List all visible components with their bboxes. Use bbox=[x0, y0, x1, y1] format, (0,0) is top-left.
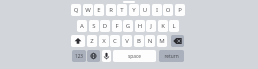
button[interactable]: Shift bbox=[71, 35, 85, 47]
staticText: I bbox=[152, 6, 162, 14]
button[interactable]: Next keyboard bbox=[87, 50, 100, 62]
button[interactable]: Backspace bbox=[171, 35, 184, 47]
staticText: F bbox=[112, 22, 122, 30]
staticText: H bbox=[135, 22, 145, 30]
staticText: return bbox=[159, 53, 184, 60]
button[interactable]: P bbox=[175, 4, 185, 16]
staticText: G bbox=[123, 22, 133, 30]
staticText: X bbox=[99, 37, 109, 45]
staticText: K bbox=[158, 22, 168, 30]
button[interactable]: Y bbox=[129, 4, 139, 16]
staticText: E bbox=[94, 6, 104, 14]
button[interactable]: return bbox=[159, 50, 184, 62]
staticText: M bbox=[157, 37, 167, 45]
staticText: V bbox=[122, 37, 132, 45]
staticText: O bbox=[163, 6, 173, 14]
staticText: N bbox=[145, 37, 155, 45]
button[interactable]: Z bbox=[87, 35, 97, 47]
button[interactable]: L bbox=[169, 20, 179, 32]
button[interactable]: W bbox=[83, 4, 93, 16]
button[interactable]: V bbox=[122, 35, 132, 47]
staticText: Z bbox=[87, 37, 97, 45]
button[interactable]: F bbox=[112, 20, 122, 32]
button[interactable]: 123 bbox=[72, 50, 86, 62]
button[interactable]: C bbox=[110, 35, 120, 47]
button[interactable]: I bbox=[152, 4, 162, 16]
button[interactable]: D bbox=[100, 20, 110, 32]
button[interactable]: E bbox=[94, 4, 104, 16]
button[interactable]: T bbox=[117, 4, 127, 16]
button[interactable]: J bbox=[146, 20, 156, 32]
button[interactable]: A bbox=[77, 20, 87, 32]
staticText: S bbox=[89, 22, 99, 30]
button[interactable]: O bbox=[163, 4, 173, 16]
staticText: L bbox=[169, 22, 179, 30]
button[interactable]: X bbox=[99, 35, 109, 47]
button[interactable]: M bbox=[157, 35, 167, 47]
staticText: 123 bbox=[72, 53, 86, 59]
staticText: P bbox=[175, 6, 185, 14]
staticText: space bbox=[113, 53, 156, 60]
button[interactable]: R bbox=[106, 4, 116, 16]
staticText: U bbox=[140, 6, 150, 14]
button[interactable]: Dictate bbox=[102, 50, 111, 62]
button[interactable]: N bbox=[145, 35, 155, 47]
staticText: J bbox=[146, 22, 156, 30]
staticText: W bbox=[83, 6, 93, 14]
button[interactable]: H bbox=[135, 20, 145, 32]
button[interactable]: G bbox=[123, 20, 133, 32]
button[interactable]: B bbox=[134, 35, 144, 47]
button[interactable]: space bbox=[113, 50, 156, 62]
button[interactable]: K bbox=[158, 20, 168, 32]
staticText: B bbox=[134, 37, 144, 45]
staticText: Q bbox=[71, 6, 81, 14]
staticText: C bbox=[110, 37, 120, 45]
staticText: R bbox=[106, 6, 116, 14]
staticText: A bbox=[77, 22, 87, 30]
staticText: Y bbox=[129, 6, 139, 14]
button[interactable]: Q bbox=[71, 4, 81, 16]
staticText: T bbox=[117, 6, 127, 14]
staticText: D bbox=[100, 22, 110, 30]
button[interactable]: S bbox=[89, 20, 99, 32]
button[interactable]: U bbox=[140, 4, 150, 16]
